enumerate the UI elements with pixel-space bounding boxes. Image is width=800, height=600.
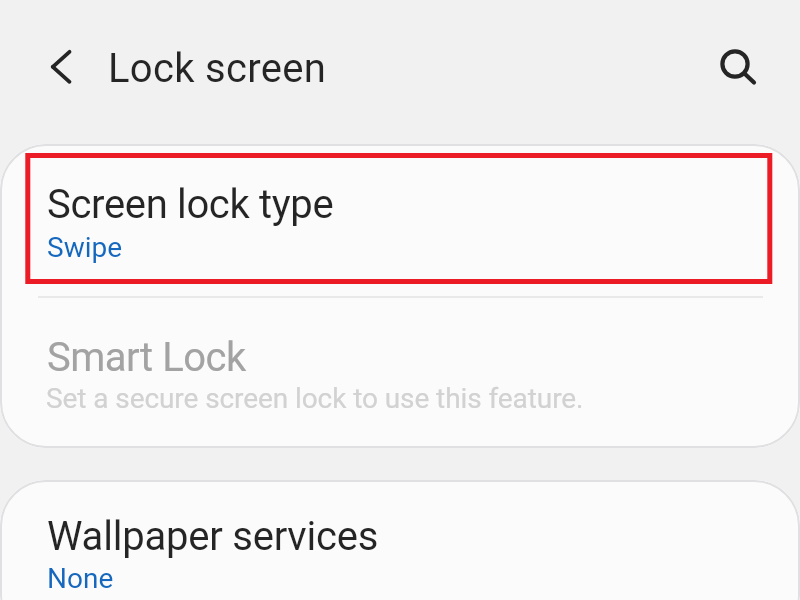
staticText: Screen lock type	[47, 181, 334, 228]
staticText: None	[47, 562, 114, 595]
button[interactable]: Wallpaper services	[0, 480, 800, 600]
staticText: Swipe	[47, 231, 123, 264]
staticText: Set a secure screen lock to use this fea…	[46, 382, 584, 415]
button[interactable]: Smart Lock	[0, 298, 800, 448]
staticText: Smart Lock	[47, 334, 246, 381]
button[interactable]: Search	[711, 40, 759, 88]
button[interactable]: Screen lock type	[0, 144, 800, 296]
button[interactable]: Navigate up	[37, 42, 85, 90]
staticText: Wallpaper services	[47, 513, 379, 560]
staticText: Lock screen	[108, 45, 327, 92]
